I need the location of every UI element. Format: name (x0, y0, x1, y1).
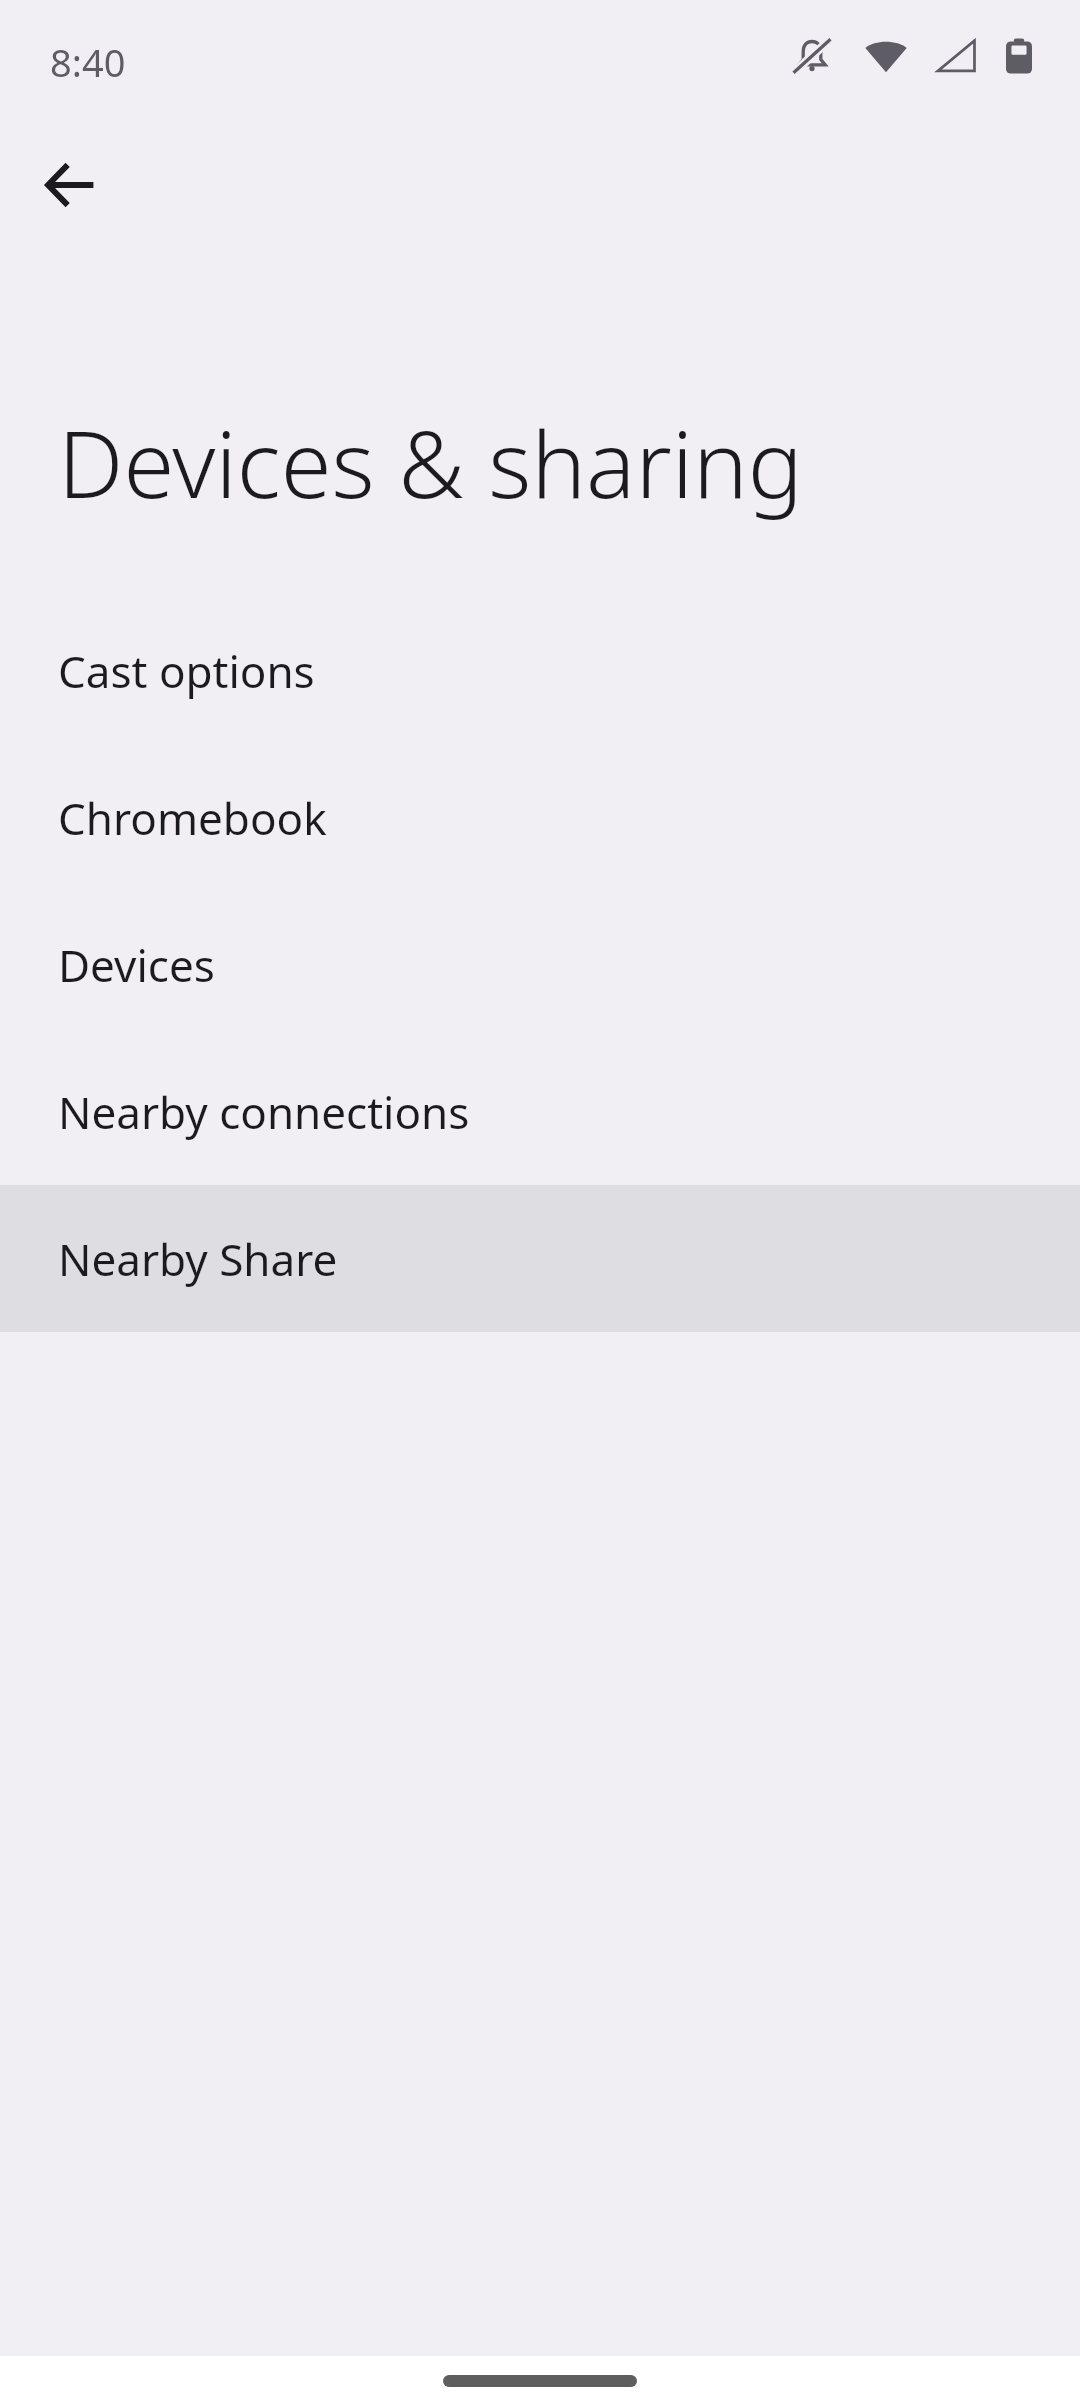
button[interactable]: Cast options (0, 597, 1080, 744)
staticText: Chromebook (58, 788, 327, 848)
button[interactable]: Devices (0, 891, 1080, 1038)
button[interactable]: Nearby Share (0, 1185, 1080, 1332)
staticText: 8:40 (50, 36, 126, 88)
button[interactable]: Back (16, 130, 126, 240)
staticText: Nearby Share (58, 1229, 338, 1289)
staticText: Devices & sharing (58, 400, 803, 525)
button[interactable]: Chromebook (0, 744, 1080, 891)
staticText: Cast options (58, 641, 315, 701)
staticText: Nearby connections (58, 1082, 470, 1142)
button[interactable]: Nearby connections (0, 1038, 1080, 1185)
staticText: Devices (58, 935, 215, 995)
